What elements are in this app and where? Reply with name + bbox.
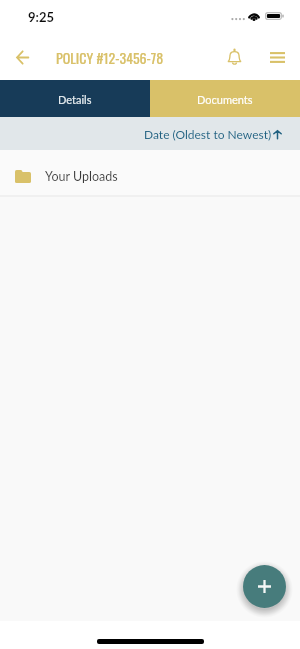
button[interactable]: Date (Oldest to Newest) (0, 117, 300, 150)
staticText: Date (Oldest to Newest) (144, 127, 272, 141)
button[interactable]: Add document (243, 565, 286, 608)
button[interactable]: Details (0, 80, 150, 117)
staticText: Documents (197, 93, 253, 106)
button[interactable]: Your Uploads (0, 150, 300, 195)
staticText: 9:25 (28, 9, 54, 25)
button[interactable]: Notifications (218, 41, 250, 73)
staticText: Details (58, 93, 92, 106)
staticText: POLICY #12-3456-78 (56, 47, 164, 68)
button[interactable]: Documents (150, 80, 300, 117)
staticText: Your Uploads (45, 169, 118, 184)
button[interactable]: Menu (261, 41, 293, 73)
button[interactable]: Back (6, 41, 39, 74)
